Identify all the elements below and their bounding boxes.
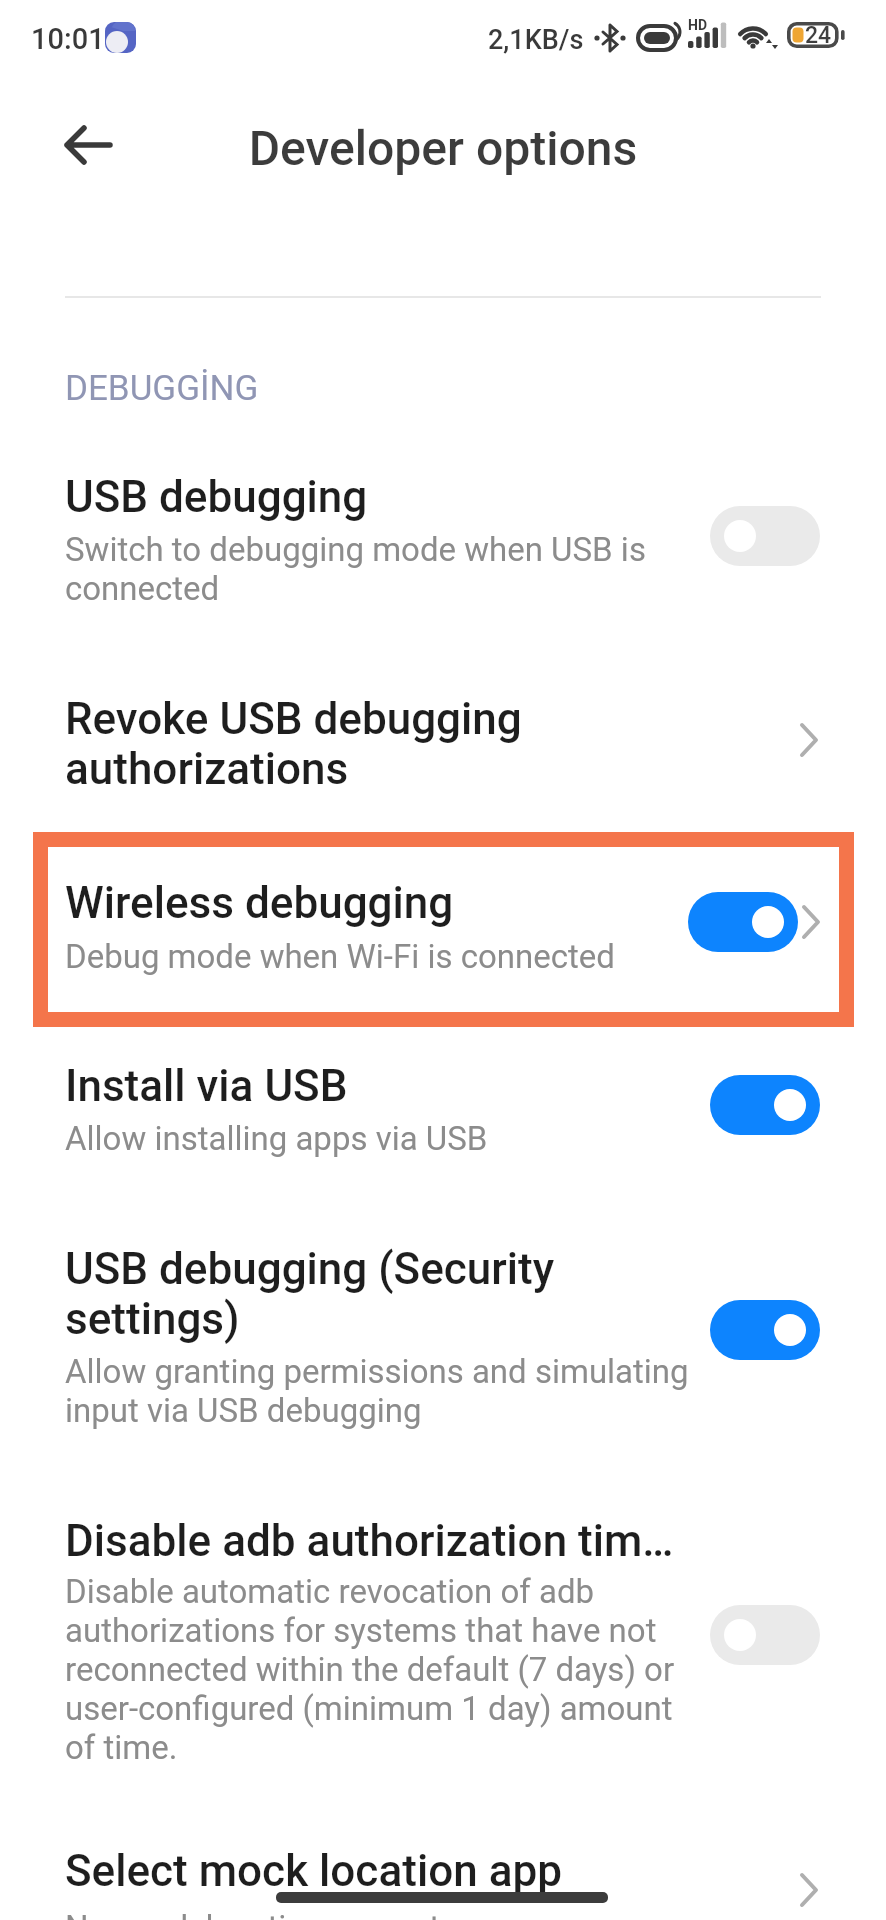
button[interactable]: USB debugging (Security settings) (0, 1228, 886, 1438)
staticText: 2,1KB/s (488, 24, 584, 56)
staticText: Switch to debugging mode when USB is con… (65, 530, 646, 608)
button[interactable] (710, 1075, 820, 1135)
staticText: 10:01 (31, 22, 105, 56)
staticText: 24 (805, 22, 832, 49)
button[interactable]: Revoke USB debugging authorizations (0, 675, 886, 805)
staticText: Debug mode when Wi-Fi is connected (65, 937, 615, 976)
staticText: Disable automatic revocation of adb auth… (65, 1572, 675, 1767)
staticText: Allow installing apps via USB (65, 1119, 488, 1158)
staticText: No mock location app set (65, 1908, 441, 1920)
button[interactable]: USB debugging (0, 455, 886, 635)
button[interactable] (710, 1605, 820, 1665)
button[interactable]: Disable adb authorization tim… (0, 1500, 886, 1780)
staticText: Disable adb authorization tim… (65, 1515, 674, 1567)
staticText: DEBUGGİNG (65, 368, 259, 409)
button[interactable] (688, 892, 798, 952)
staticText: Developer options (0, 120, 886, 176)
staticText: Revoke USB debugging authorizations (65, 693, 522, 794)
button[interactable]: Install via USB (0, 1045, 886, 1175)
staticText: USB debugging (65, 471, 368, 523)
button[interactable]: Wireless debugging (0, 832, 886, 1027)
button[interactable]: Select mock location app (0, 1830, 886, 1920)
staticText: USB debugging (Security settings) (65, 1243, 555, 1344)
staticText: Allow granting permissions and simulatin… (65, 1352, 689, 1430)
staticText: HD (688, 17, 708, 33)
staticText: Select mock location app (65, 1845, 562, 1897)
staticText: Install via USB (65, 1060, 348, 1112)
button[interactable] (64, 126, 114, 164)
button[interactable] (710, 506, 820, 566)
staticText: Wireless debugging (65, 877, 454, 929)
button[interactable] (710, 1300, 820, 1360)
